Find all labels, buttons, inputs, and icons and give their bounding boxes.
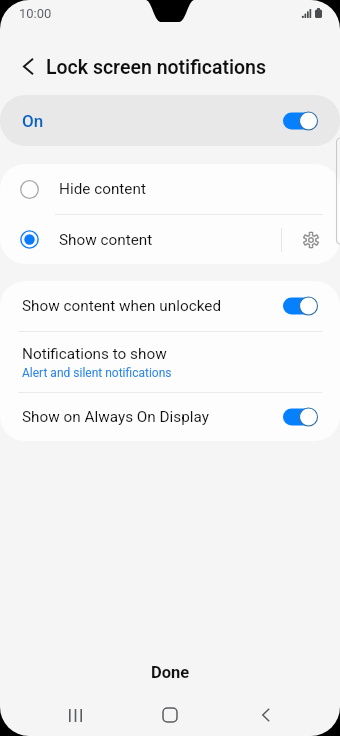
staticText: On [22,111,44,131]
button[interactable]: Show on Always On Display [0,393,340,441]
button[interactable]: Back [242,694,290,736]
button[interactable]: Back [12,50,44,82]
staticText: 10:00 [19,6,52,21]
button[interactable]: Notification settings [282,215,340,264]
staticText: Show content when unlocked [22,297,222,315]
button[interactable]: Notifications to show [0,332,340,392]
button[interactable]: Recent apps [51,694,99,736]
button[interactable]: Done [0,642,340,694]
staticText: Lock screen notifications [46,56,267,79]
staticText: Show on Always On Display [22,408,209,426]
staticText: Notifications to show [22,345,167,363]
staticText: Hide content [59,180,146,198]
button[interactable]: On [0,95,340,146]
button[interactable]: Hide content [0,164,340,214]
button[interactable]: Show content when unlocked [0,281,340,331]
button[interactable]: Show content [0,215,281,264]
staticText: Alert and silent notifications [22,366,172,380]
staticText: Show content [59,231,153,249]
staticText: Done [151,663,190,682]
button[interactable]: Home [146,694,194,736]
